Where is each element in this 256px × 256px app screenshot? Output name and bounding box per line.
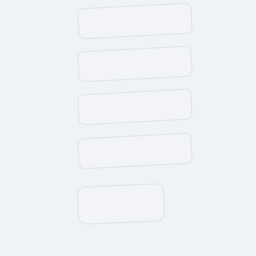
button[interactable]: Row 2 [78, 49, 191, 79]
button[interactable]: Row 4 [78, 136, 191, 166]
button[interactable]: Row 1 [78, 6, 191, 36]
button[interactable]: Row 3 [78, 92, 191, 122]
